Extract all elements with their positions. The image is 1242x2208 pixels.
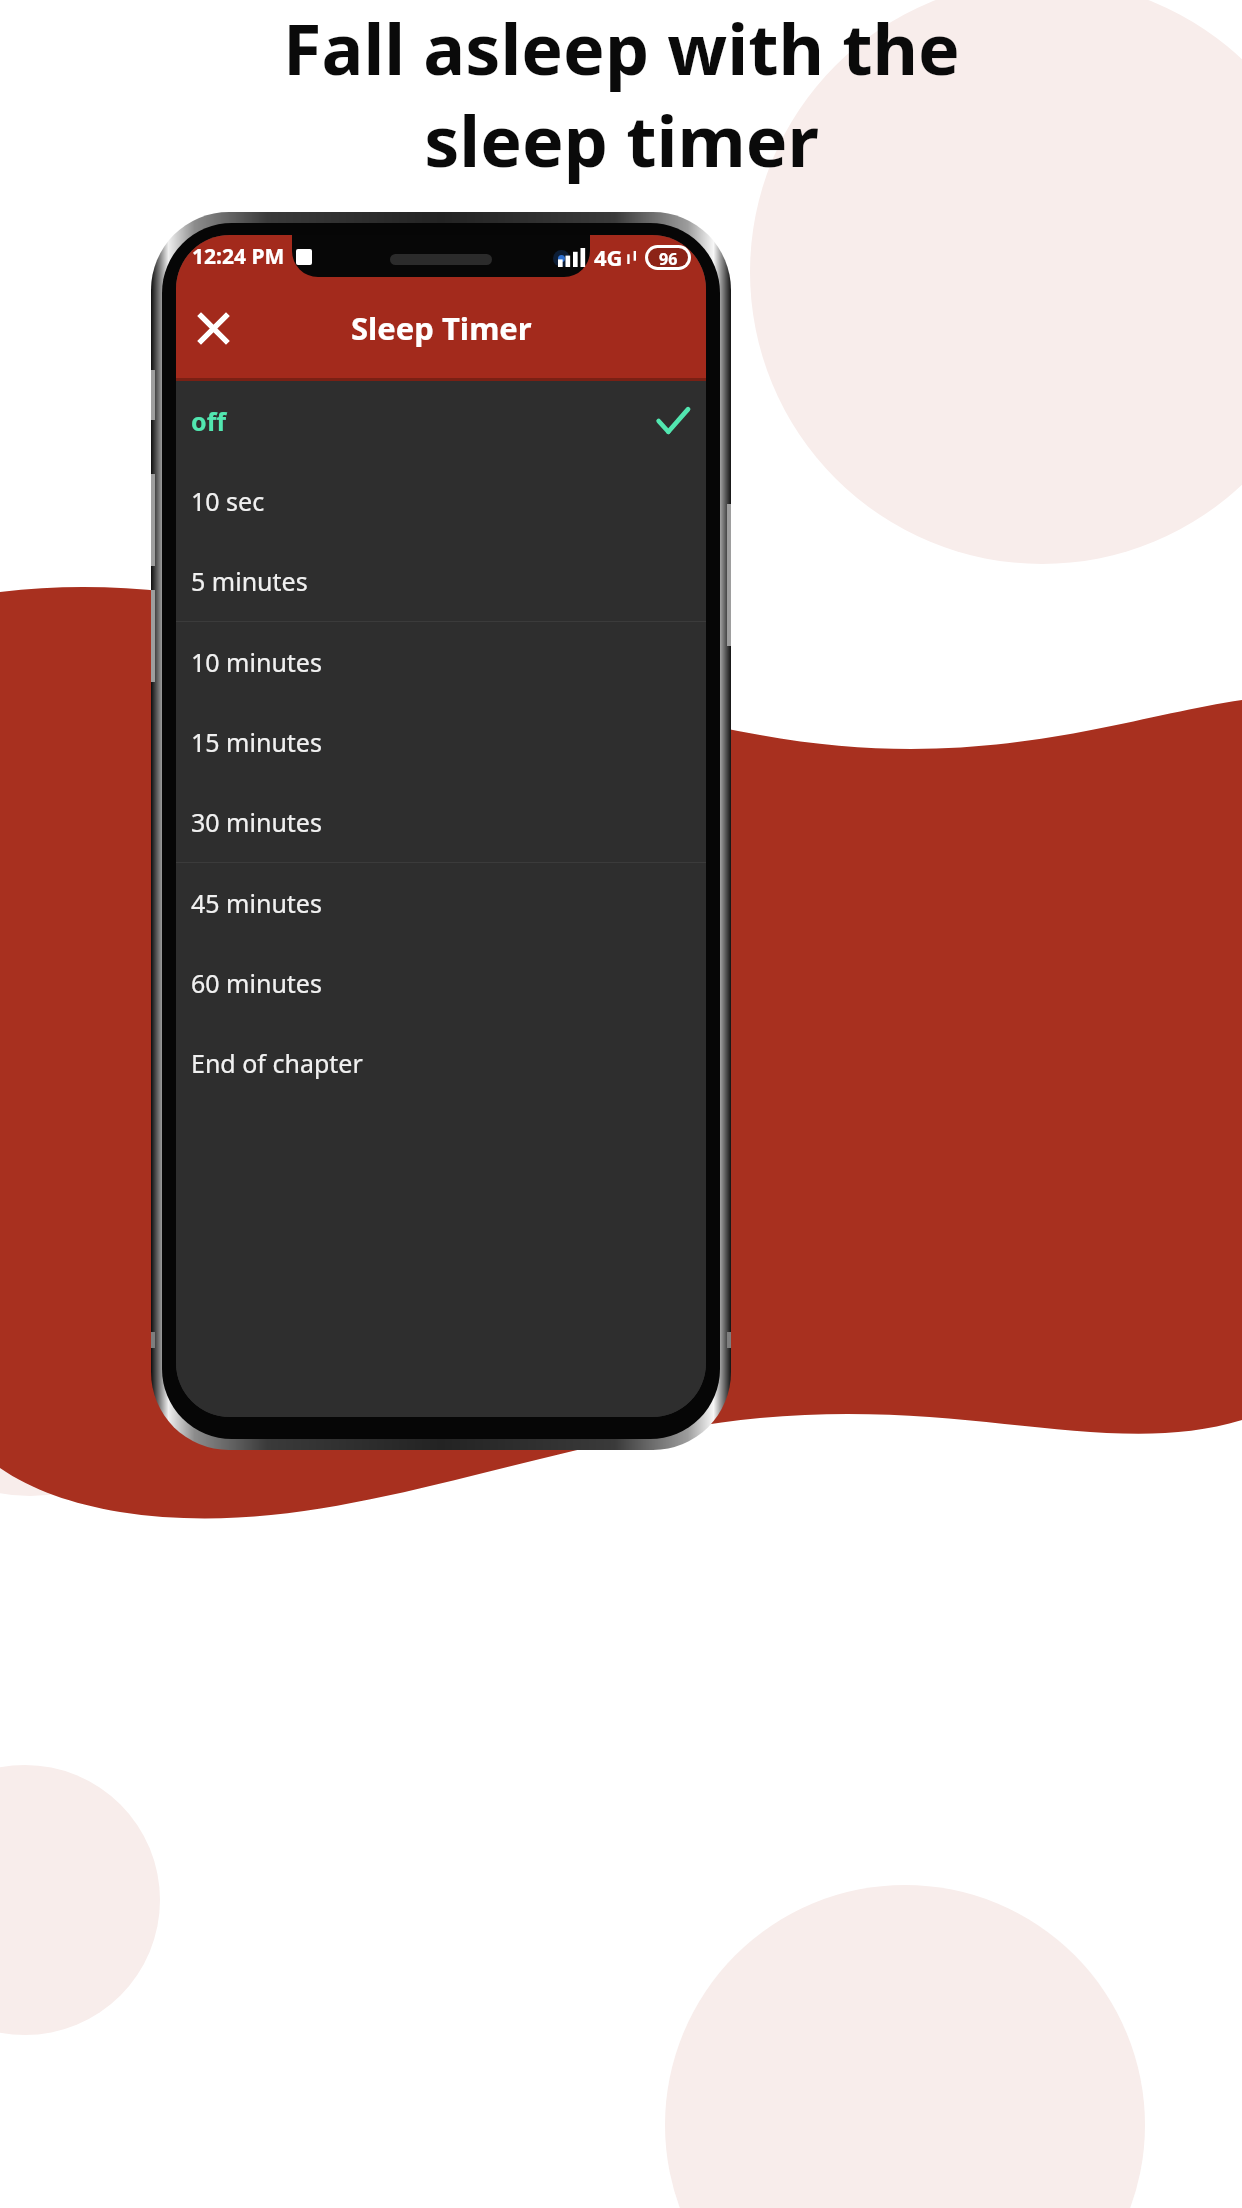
staticText: off [191,404,226,438]
staticText: 12:24 PM [192,242,285,271]
staticText: 10 minutes [191,645,322,679]
staticText: 96 [659,248,678,267]
staticText: 60 minutes [191,966,322,1000]
staticText: 5 minutes [191,564,308,598]
button[interactable]: 10 minutes [176,622,706,702]
button[interactable]: 30 minutes [176,782,706,862]
staticText: Sleep Timer [351,307,532,349]
staticText: End of chapter [191,1046,363,1080]
staticText: Fall asleep with the sleep timer [283,0,960,188]
staticText: 30 minutes [191,805,322,839]
button[interactable]: off [176,381,706,461]
button[interactable]: End of chapter [176,1023,706,1103]
staticText: 15 minutes [191,725,322,759]
button[interactable]: 10 sec [176,461,706,541]
staticText: 45 minutes [191,886,322,920]
button[interactable]: 60 minutes [176,943,706,1023]
button[interactable]: 15 minutes [176,702,706,782]
button[interactable]: 45 minutes [176,863,706,943]
staticText: 4G [594,242,623,272]
button[interactable]: 5 minutes [176,541,706,621]
staticText: 10 sec [191,484,265,518]
button[interactable]: Close sleep timer [183,298,243,358]
